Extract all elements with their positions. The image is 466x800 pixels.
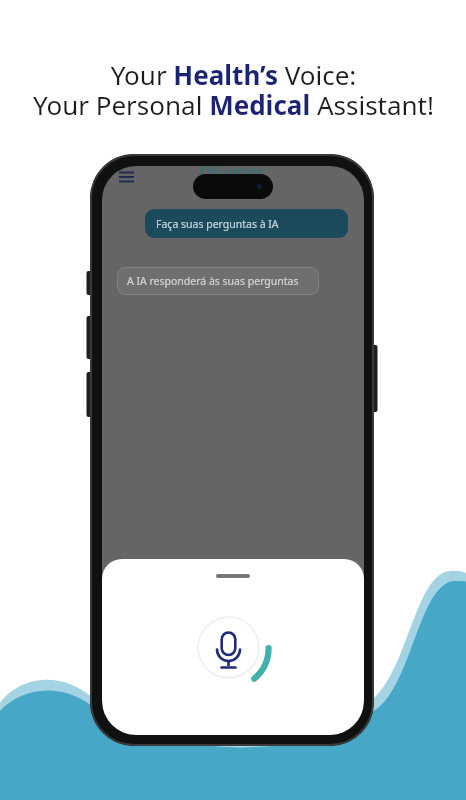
button[interactable]: [117, 168, 137, 184]
button[interactable]: [197, 616, 260, 679]
staticText: Olá amigo: [200, 166, 266, 181]
button[interactable]: Faça suas perguntas à IA: [145, 209, 348, 238]
staticText: A IA responderá às suas perguntas: [127, 274, 299, 288]
staticText: Your Health’s Voice: Your Personal Medic…: [33, 57, 434, 123]
staticText: Faça suas perguntas à IA: [156, 217, 279, 231]
